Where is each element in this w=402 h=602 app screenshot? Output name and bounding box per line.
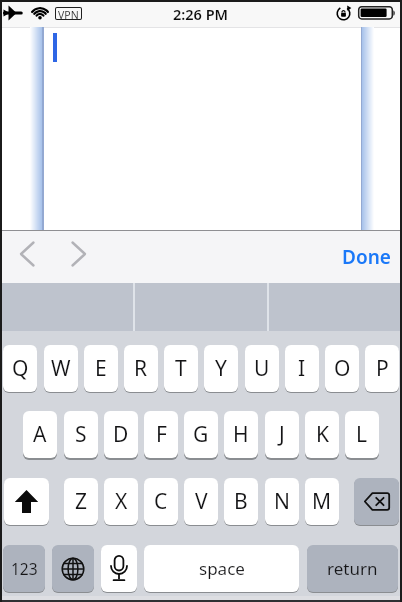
staticText: 2:26 PM <box>173 4 229 24</box>
staticText: W <box>51 354 71 383</box>
button[interactable]: return <box>307 545 398 592</box>
button[interactable]: H <box>224 411 258 458</box>
button[interactable]: B <box>224 478 258 525</box>
button[interactable]: T <box>164 345 198 392</box>
staticText: F <box>156 420 167 449</box>
button[interactable] <box>4 478 49 525</box>
button[interactable]: U <box>245 345 279 392</box>
button[interactable]: space <box>144 545 299 592</box>
staticText: 123 <box>11 558 38 579</box>
button[interactable]: 123 <box>3 545 45 592</box>
staticText: P <box>376 354 389 383</box>
staticText: K <box>316 420 329 449</box>
staticText: X <box>115 487 128 516</box>
staticText: space <box>199 557 245 580</box>
button[interactable]: Q <box>3 345 37 392</box>
staticText: return <box>327 557 378 580</box>
staticText: G <box>193 420 209 449</box>
button[interactable]: L <box>345 411 379 458</box>
button[interactable]: Y <box>204 345 238 392</box>
staticText: H <box>233 420 249 449</box>
staticText: N <box>274 487 290 516</box>
button[interactable]: P <box>365 345 399 392</box>
button[interactable] <box>354 478 399 525</box>
staticText: D <box>113 420 129 449</box>
staticText: J <box>279 420 285 449</box>
button[interactable]: D <box>104 411 138 458</box>
button[interactable]: C <box>144 478 178 525</box>
staticText: R <box>134 354 148 383</box>
staticText: C <box>154 487 168 516</box>
staticText: T <box>175 354 187 383</box>
button[interactable]: E <box>84 345 118 392</box>
button[interactable] <box>52 545 94 592</box>
staticText: A <box>33 420 47 449</box>
button[interactable]: M <box>305 478 339 525</box>
button[interactable] <box>63 239 93 275</box>
button[interactable] <box>101 545 137 592</box>
staticText: O <box>334 354 351 383</box>
staticText: Done <box>342 244 391 270</box>
staticText: I <box>298 354 306 383</box>
button[interactable] <box>13 239 43 275</box>
button[interactable]: A <box>23 411 57 458</box>
button[interactable]: J <box>265 411 299 458</box>
staticText: VPN <box>58 8 79 19</box>
button[interactable] <box>0 283 133 331</box>
button[interactable]: O <box>325 345 359 392</box>
button[interactable]: Done <box>342 244 391 270</box>
button[interactable]: Z <box>64 478 98 525</box>
staticText: S <box>75 420 87 449</box>
staticText: M <box>312 487 332 516</box>
button[interactable] <box>269 283 402 331</box>
button[interactable]: R <box>124 345 158 392</box>
staticText: B <box>234 487 248 516</box>
button[interactable]: V <box>184 478 218 525</box>
staticText: Z <box>75 487 88 516</box>
staticText: Q <box>12 354 29 383</box>
button[interactable]: F <box>144 411 178 458</box>
button[interactable]: G <box>184 411 218 458</box>
staticText: U <box>254 354 270 383</box>
staticText: L <box>356 420 368 449</box>
staticText: Y <box>215 354 227 383</box>
button[interactable]: X <box>104 478 138 525</box>
staticText: E <box>95 354 107 383</box>
button[interactable]: I <box>285 345 319 392</box>
staticText: V <box>195 487 208 516</box>
button[interactable]: N <box>265 478 299 525</box>
button[interactable]: S <box>64 411 98 458</box>
button[interactable]: K <box>305 411 339 458</box>
button[interactable]: W <box>44 345 78 392</box>
